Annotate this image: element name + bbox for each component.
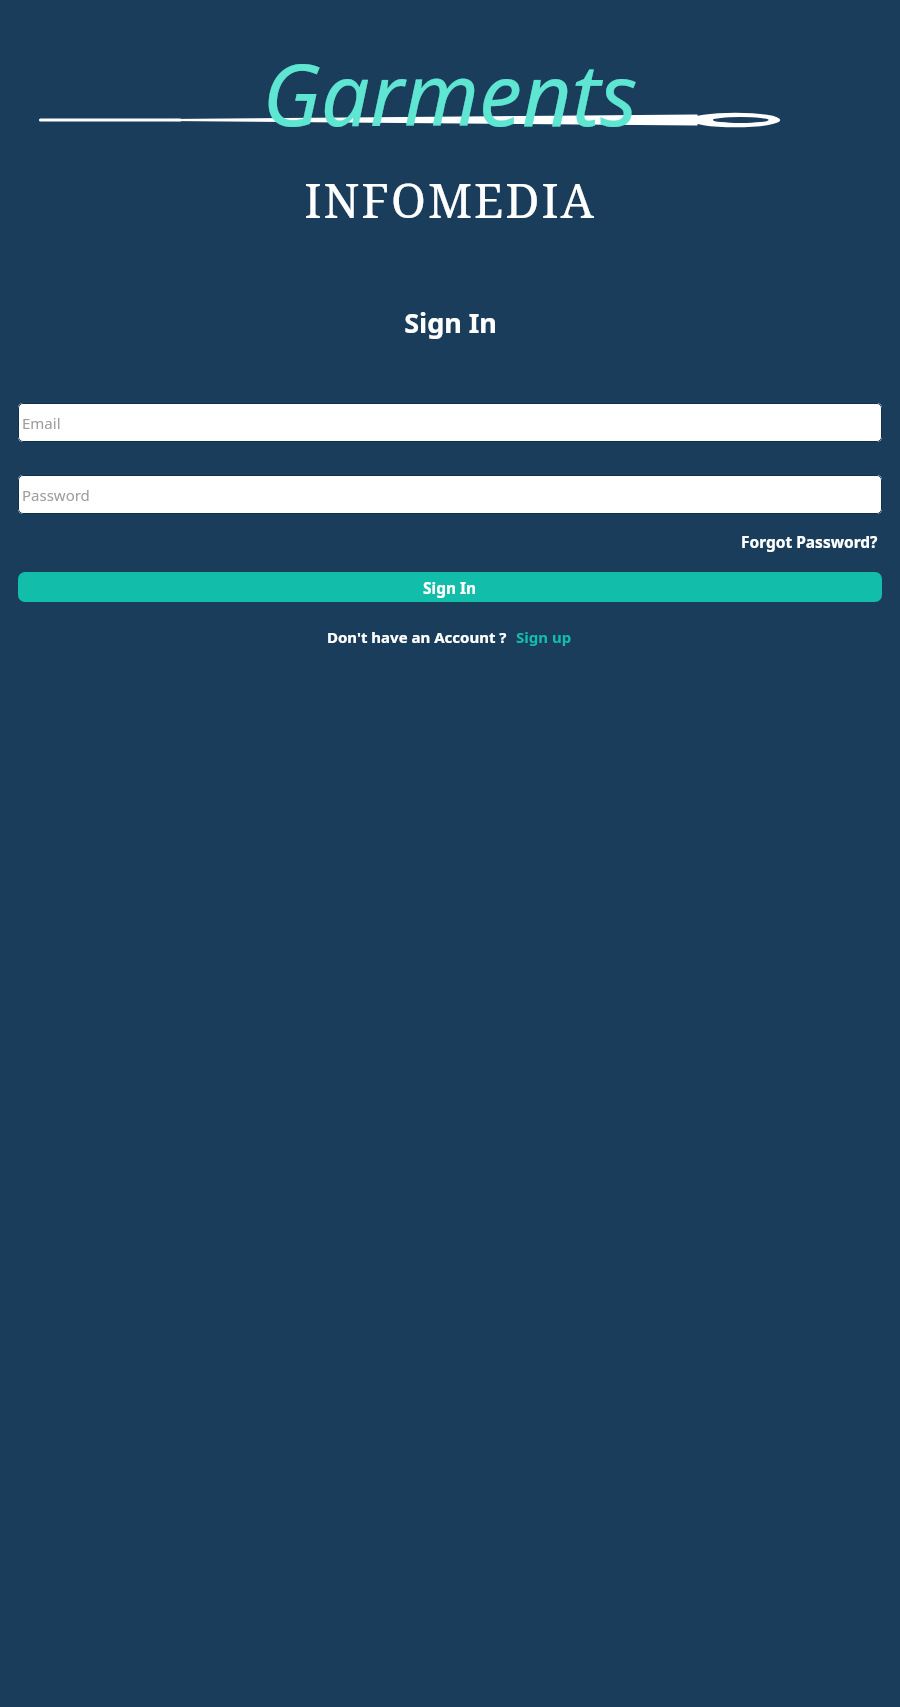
button[interactable]: Sign up <box>514 624 574 650</box>
staticText: Password <box>22 485 90 505</box>
button[interactable]: Email <box>18 403 882 442</box>
staticText: Don't have an Account ? <box>327 627 507 647</box>
staticText: Sign up <box>516 627 572 647</box>
staticText: Sign In <box>404 304 497 341</box>
staticText: INFOMEDIA <box>304 168 596 232</box>
staticText: Forgot Password? <box>741 531 878 552</box>
staticText: Sign In <box>423 577 477 598</box>
button[interactable]: Forgot Password? <box>737 527 882 556</box>
staticText: Email <box>22 413 61 433</box>
button[interactable]: Sign In <box>18 572 882 602</box>
button[interactable]: Password <box>18 475 882 514</box>
staticText: Garments <box>262 34 638 151</box>
